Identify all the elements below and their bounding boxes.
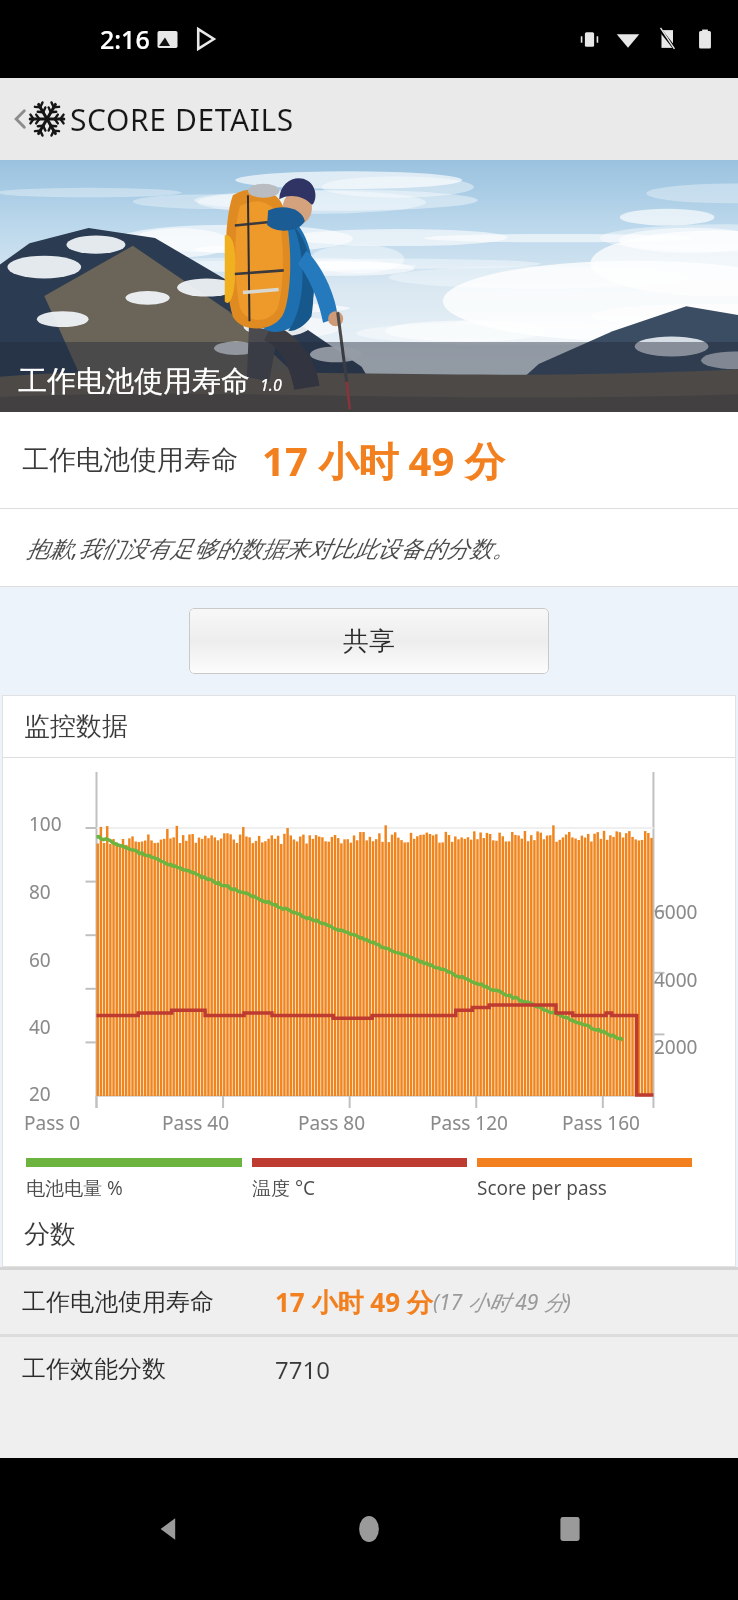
staticText: 7710 xyxy=(275,1353,330,1386)
staticText: 电池电量 % xyxy=(26,1175,123,1201)
staticText: 抱歉,我们没有足够的数据来对比此设备的分数。 xyxy=(26,532,515,563)
staticText: 1.0 xyxy=(260,374,282,396)
staticText: 60 xyxy=(29,947,51,973)
staticText: 工作效能分数 xyxy=(22,1354,275,1384)
button[interactable]: Home xyxy=(337,1497,401,1561)
staticText: SCORE DETAILS xyxy=(70,99,294,140)
button[interactable]: Back xyxy=(0,78,738,160)
staticText: 2:16 xyxy=(100,22,150,56)
staticText: (17 小时 49 分) xyxy=(433,1288,571,1317)
staticText: Pass 80 xyxy=(298,1110,366,1136)
staticText: 温度 °C xyxy=(252,1175,316,1201)
staticText: Score per pass xyxy=(477,1175,607,1201)
staticText: 工作电池使用寿命 xyxy=(22,443,238,477)
staticText: 40 xyxy=(29,1014,51,1040)
staticText: 监控数据 xyxy=(24,710,128,743)
staticText: 20 xyxy=(29,1081,51,1107)
button[interactable]: 工作电池使用寿命 xyxy=(0,1270,738,1334)
staticText: Pass 0 xyxy=(24,1110,81,1136)
staticText: 100 xyxy=(29,811,62,837)
button[interactable]: Back xyxy=(137,1497,201,1561)
staticText: 工作电池使用寿命 xyxy=(22,1287,275,1317)
staticText: Pass 160 xyxy=(562,1110,640,1136)
staticText: 分数 xyxy=(24,1218,76,1251)
staticText: Pass 40 xyxy=(162,1110,230,1136)
staticText: 80 xyxy=(29,879,51,905)
staticText: 工作电池使用寿命 xyxy=(18,363,250,400)
staticText: 6000 xyxy=(654,899,698,925)
staticText: 2000 xyxy=(654,1034,698,1060)
button[interactable]: 共享 xyxy=(189,608,549,674)
staticText: Pass 120 xyxy=(430,1110,508,1136)
staticText: 17 小时 49 分 xyxy=(275,1284,433,1320)
button[interactable]: Recent apps xyxy=(538,1497,602,1561)
staticText: 4000 xyxy=(654,967,698,993)
staticText: 共享 xyxy=(343,625,395,658)
button[interactable]: 工作效能分数 xyxy=(0,1337,738,1401)
staticText: 17 小时 49 分 xyxy=(262,433,505,488)
